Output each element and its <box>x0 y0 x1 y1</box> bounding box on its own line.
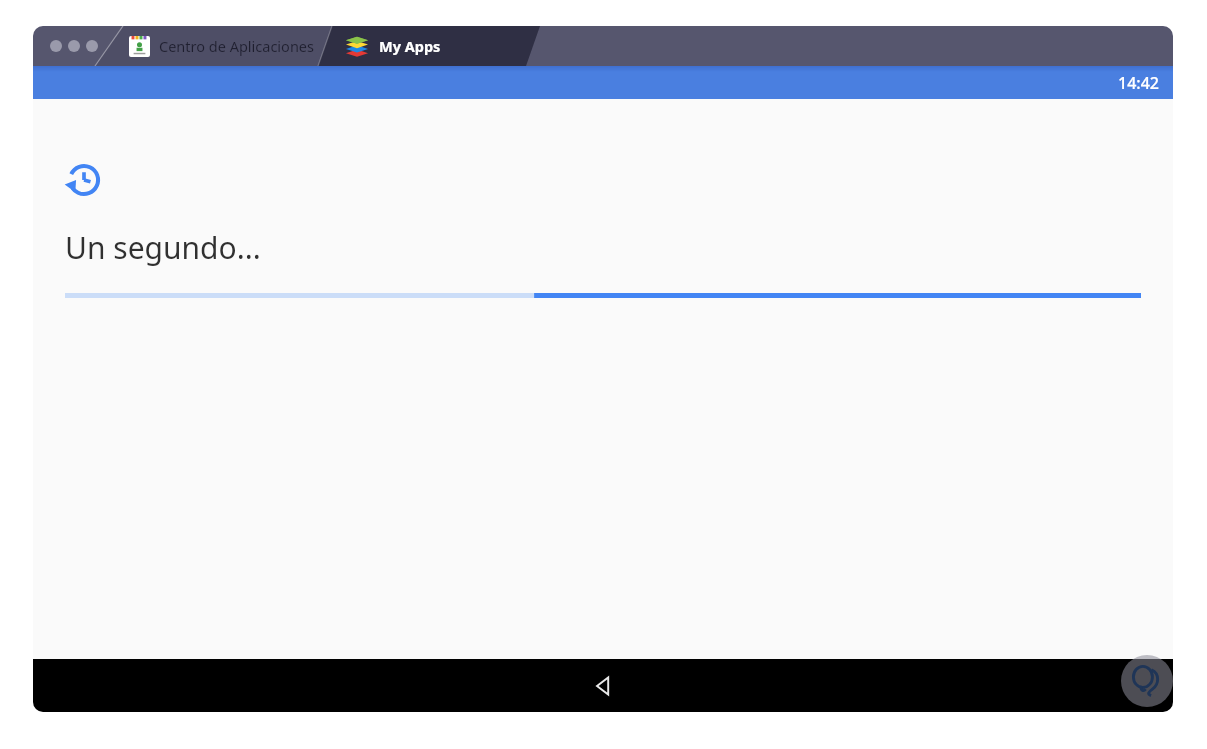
staticText: 14:42 <box>1118 72 1159 94</box>
button[interactable] <box>86 40 98 52</box>
button[interactable] <box>68 40 80 52</box>
staticText: Un segundo... <box>65 227 261 268</box>
button[interactable]: My Apps <box>339 26 534 66</box>
staticText: Centro de Aplicaciones <box>159 36 314 56</box>
button[interactable]: Centro de Aplicaciones <box>129 26 329 66</box>
button[interactable]: Back <box>579 662 627 710</box>
staticText: My Apps <box>379 36 441 56</box>
button[interactable] <box>50 40 62 52</box>
button[interactable]: Assistant <box>1121 655 1173 707</box>
